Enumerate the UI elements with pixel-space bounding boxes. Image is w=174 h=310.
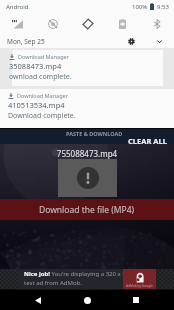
- button[interactable]: Bluetooth: [140, 13, 174, 34]
- staticText: Nice job!: [24, 270, 50, 278]
- button[interactable]: Settings: [124, 34, 138, 48]
- button[interactable]: Sound off: [35, 13, 70, 34]
- button[interactable]: Nice job!: [0, 269, 174, 289]
- staticText: Download the file (MP4): [39, 204, 135, 216]
- button[interactable]: Download Manager: [0, 89, 174, 128]
- button[interactable]: PASTE & DOWNLOAD: [66, 130, 123, 137]
- staticText: CLEAR ALL: [128, 136, 167, 144]
- staticText: Android: [6, 3, 29, 11]
- staticText: PASTE & DOWNLOAD: [66, 130, 123, 137]
- staticText: 100%: [132, 3, 148, 11]
- staticText: test ad from AdMob.: [24, 279, 82, 287]
- button[interactable]: Auto rotate: [70, 13, 105, 34]
- staticText: Download complete.: [8, 111, 76, 121]
- button[interactable]: Download Manager: [12, 50, 163, 86]
- staticText: ownload complete.: [9, 72, 72, 82]
- button[interactable]: CLEAR ALL: [128, 136, 167, 144]
- staticText: Download Manager: [18, 53, 69, 60]
- staticText: AdMob by Google: [126, 284, 153, 288]
- staticText: 410513534.mp4: [8, 100, 65, 110]
- button[interactable]: Download the file (MP4): [0, 199, 174, 220]
- staticText: 35088473.mp4: [9, 61, 62, 71]
- staticText: Download Manager: [17, 92, 68, 99]
- staticText: 755088473.mp4: [0, 148, 174, 159]
- button[interactable]: Recent apps: [125, 290, 147, 310]
- button[interactable]: Mobile data: [0, 13, 35, 34]
- button[interactable]: Back: [27, 290, 49, 310]
- button[interactable]: Video preview unavailable: [58, 159, 117, 197]
- button[interactable]: Battery saver: [105, 13, 140, 34]
- staticText: 9:53: [157, 3, 169, 11]
- button[interactable]: Home: [76, 290, 98, 310]
- staticText: You're displaying a 320 x 50: [50, 270, 130, 278]
- button[interactable]: Collapse quick settings: [152, 34, 166, 48]
- staticText: Mon, Sep 25: [7, 37, 45, 46]
